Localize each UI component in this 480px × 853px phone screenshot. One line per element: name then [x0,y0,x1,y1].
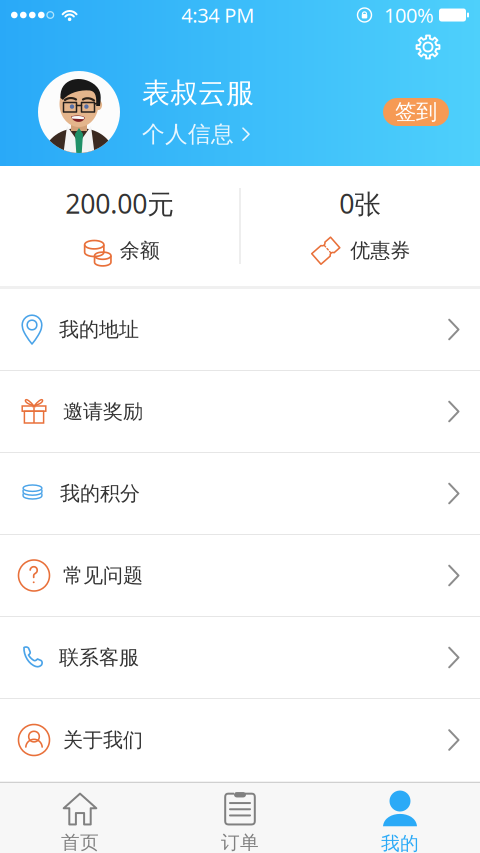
staticText: 我的积分 [60,481,140,506]
button[interactable]: 我的 [320,783,480,853]
staticText: 表叔云服 [142,76,254,110]
staticText: 邀请奖励 [63,399,143,424]
button[interactable]: 关于我们 [0,699,480,781]
button[interactable]: 首页 [0,783,160,853]
staticText: 订单 [221,831,259,853]
staticText: 常见问题 [63,563,143,588]
staticText: 我的 [381,832,419,853]
staticText: 0张 [339,186,381,221]
button[interactable]: 我的地址 [0,289,480,371]
staticText: 个人信息 [142,120,234,148]
button[interactable]: 常见问题 [0,535,480,617]
button[interactable]: 0张 [240,186,480,266]
button[interactable]: 邀请奖励 [0,371,480,453]
staticText: 200.00元 [65,186,174,221]
staticText: 4:34 PM [181,2,254,28]
staticText: 签到 [395,99,437,125]
button[interactable]: 签到 [383,98,449,126]
button[interactable]: 200.00元 [0,186,239,266]
staticText: 100% [384,2,434,28]
button[interactable]: 我的积分 [0,453,480,535]
staticText: 优惠券 [350,238,410,263]
staticText: 联系客服 [59,645,139,670]
button[interactable]: 个人信息 [142,120,250,148]
staticText: 余额 [120,238,160,263]
staticText: 关于我们 [63,728,143,752]
staticText: 首页 [61,831,99,853]
button[interactable]: 订单 [160,783,320,853]
button[interactable]: Settings [408,27,448,67]
button[interactable]: 联系客服 [0,617,480,699]
staticText: 我的地址 [59,317,139,342]
